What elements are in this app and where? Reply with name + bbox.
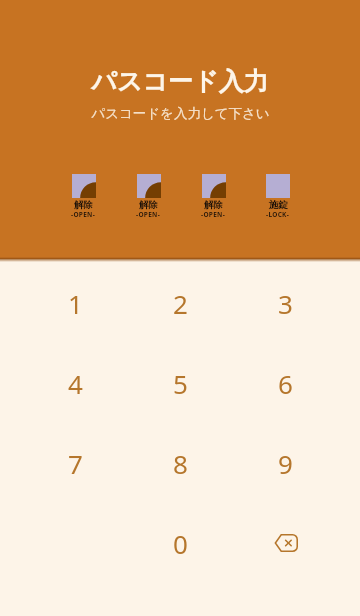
staticText: -LOCK- bbox=[266, 210, 290, 219]
staticText: 3 bbox=[278, 286, 293, 321]
button[interactable]: 9 bbox=[233, 423, 338, 503]
button[interactable]: 0 bbox=[128, 503, 233, 583]
staticText: パスコード入力 bbox=[91, 66, 269, 97]
staticText: パスコードを入力して下さい bbox=[91, 105, 270, 122]
staticText: 7 bbox=[68, 446, 83, 481]
staticText: -OPEN- bbox=[71, 210, 96, 219]
staticText: 解除 bbox=[204, 199, 223, 211]
staticText: 2 bbox=[173, 286, 188, 321]
staticText: 8 bbox=[173, 446, 188, 481]
button[interactable]: 5 bbox=[128, 343, 233, 423]
other: Backspace bbox=[274, 534, 298, 552]
staticText: 解除 bbox=[139, 199, 158, 211]
button[interactable]: 8 bbox=[128, 423, 233, 503]
button[interactable]: 1 bbox=[23, 263, 128, 343]
staticText: 4 bbox=[68, 366, 83, 401]
button[interactable]: 2 bbox=[128, 263, 233, 343]
button[interactable]: Backspace bbox=[233, 503, 338, 583]
staticText: 施錠 bbox=[269, 199, 288, 211]
button[interactable]: 7 bbox=[23, 423, 128, 503]
staticText: 9 bbox=[278, 446, 293, 481]
staticText: 6 bbox=[278, 366, 293, 401]
staticText: 0 bbox=[173, 526, 188, 561]
staticText: -OPEN- bbox=[136, 210, 161, 219]
staticText: -OPEN- bbox=[201, 210, 226, 219]
button[interactable]: 3 bbox=[233, 263, 338, 343]
button[interactable]: 4 bbox=[23, 343, 128, 423]
button[interactable]: 6 bbox=[233, 343, 338, 423]
staticText: 5 bbox=[173, 366, 188, 401]
staticText: 解除 bbox=[74, 199, 93, 211]
staticText: 1 bbox=[68, 286, 83, 321]
